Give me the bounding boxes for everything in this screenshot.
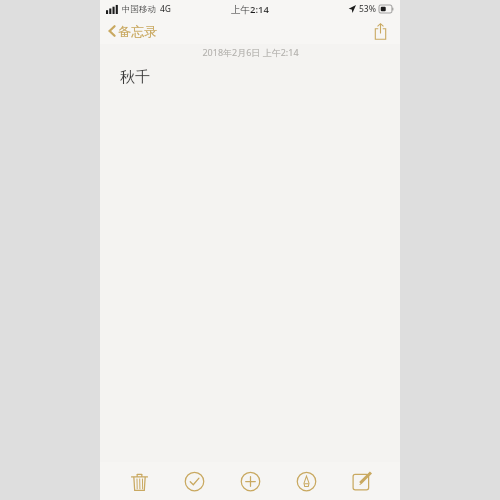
staticText: 秋千 <box>120 68 150 87</box>
button[interactable]: Checklist <box>177 464 211 498</box>
staticText: 中国移动 <box>122 4 156 15</box>
staticText: 备忘录 <box>118 23 157 39</box>
staticText: 上午2:14 <box>231 3 269 16</box>
button[interactable]: 备忘录 <box>105 21 160 41</box>
button[interactable]: Add <box>233 464 267 498</box>
button[interactable]: Delete <box>122 464 156 498</box>
staticText: 53% <box>359 3 376 15</box>
staticText: 2018年2月6日 上午2:14 <box>202 46 299 58</box>
button[interactable]: Markup <box>289 464 323 498</box>
button[interactable]: New note <box>344 464 378 498</box>
button[interactable]: Share <box>368 19 392 43</box>
staticText: 4G <box>160 3 172 15</box>
